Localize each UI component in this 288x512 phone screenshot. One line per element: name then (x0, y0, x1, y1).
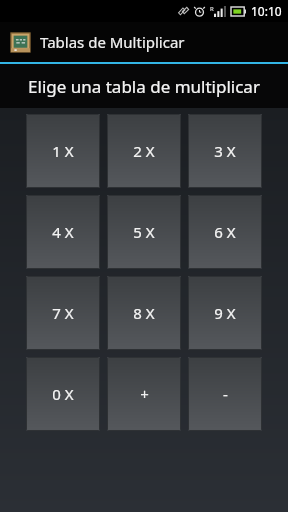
staticText: 5 X (133, 222, 155, 242)
other: Sync (178, 6, 189, 17)
staticText: 7 X (52, 303, 74, 323)
staticText: Tablas de Multiplicar (40, 32, 185, 52)
staticText: 3 X (214, 141, 236, 161)
staticText: + (140, 384, 149, 404)
staticText: 6 X (214, 222, 236, 242)
button[interactable]: 5 X (107, 195, 181, 269)
staticText: 0 X (52, 384, 74, 404)
button[interactable]: + (107, 357, 181, 431)
staticText: 9 X (214, 303, 236, 323)
button[interactable]: 9 X (188, 276, 262, 350)
button[interactable]: 3 X (188, 114, 262, 188)
staticText: 1 X (52, 141, 74, 161)
staticText: 2 X (133, 141, 155, 161)
button[interactable]: 1 X (26, 114, 100, 188)
staticText: R (210, 5, 214, 13)
staticText: 10:10 (251, 3, 282, 19)
button[interactable]: 7 X (26, 276, 100, 350)
button[interactable]: - (188, 357, 262, 431)
button[interactable]: 6 X (188, 195, 262, 269)
staticText: 4 X (52, 222, 74, 242)
button[interactable]: 8 X (107, 276, 181, 350)
staticText: 8 X (133, 303, 155, 323)
staticText: - (223, 384, 228, 404)
button[interactable]: 4 X (26, 195, 100, 269)
staticText: Elige una tabla de multiplicar (28, 75, 260, 98)
other: Battery (231, 7, 246, 16)
other: Signal strength (214, 6, 226, 17)
other: Alarm (194, 6, 205, 17)
button[interactable]: 0 X (26, 357, 100, 431)
button[interactable]: 2 X (107, 114, 181, 188)
